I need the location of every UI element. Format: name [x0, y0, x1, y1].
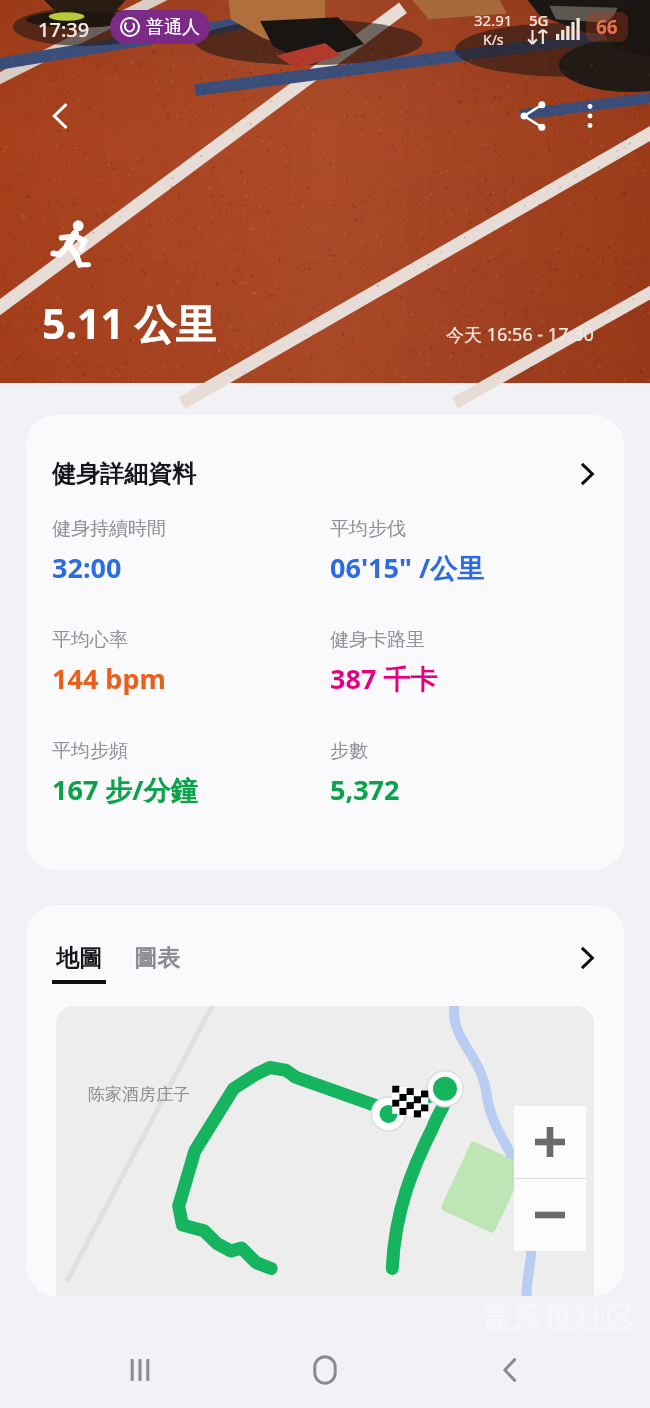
button[interactable]: More options	[552, 78, 628, 154]
staticText: 5,372	[330, 771, 400, 808]
staticText: 5G	[529, 10, 549, 30]
staticText: K/s	[483, 30, 504, 49]
staticText: 今天 16:56 - 17:30	[446, 322, 594, 347]
staticText: 167 步/分鐘	[52, 771, 198, 808]
staticText: 健身持續時間	[52, 517, 166, 541]
staticText: 〈@lm闲贤	[486, 1340, 636, 1380]
button[interactable]: Home	[289, 1334, 361, 1406]
button[interactable]: Back	[474, 1334, 546, 1406]
staticText: 387 千卡	[330, 660, 438, 697]
button[interactable]: Recents	[104, 1334, 176, 1406]
staticText: 圖表	[134, 944, 180, 973]
staticText: 普通人	[146, 16, 200, 39]
staticText: 平均心率	[52, 628, 128, 652]
button[interactable]: 地圖	[52, 944, 106, 984]
staticText: 健身卡路里	[330, 628, 425, 652]
staticText: 144 bpm	[52, 660, 166, 697]
button[interactable]: Zoom in	[514, 1106, 586, 1178]
staticText: 06'15" /公里	[330, 549, 485, 586]
staticText: 32.91	[474, 10, 513, 30]
staticText: 5.11 公里	[42, 295, 217, 351]
button[interactable]: Share	[495, 78, 571, 154]
staticText: 66	[596, 14, 618, 40]
staticText: 平均步頻	[52, 739, 128, 763]
staticText: 平均步伐	[330, 517, 406, 541]
button[interactable]: Open map	[572, 943, 602, 973]
staticText: 陈家酒房庄子	[88, 1084, 190, 1105]
staticText: 步數	[330, 739, 368, 763]
staticText: 32:00	[52, 549, 122, 586]
button[interactable]: Zoom out	[514, 1179, 586, 1251]
staticText: 健身詳細資料	[52, 459, 196, 489]
staticText: 17:39	[38, 16, 90, 43]
button[interactable]: 健身詳細資料	[26, 415, 624, 517]
staticText: 地圖	[56, 944, 102, 973]
button[interactable]: Back	[22, 78, 98, 154]
button[interactable]: 圖表	[134, 944, 180, 984]
button[interactable]: 陈家酒房庄子	[56, 1006, 594, 1296]
